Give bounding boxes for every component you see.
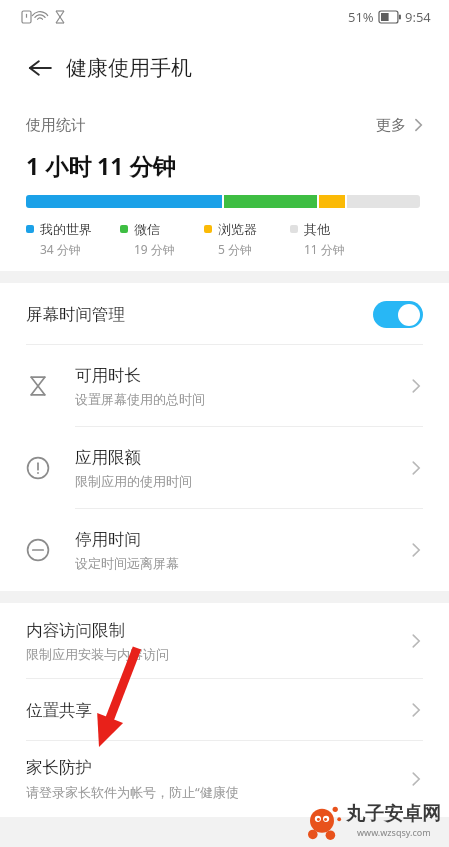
staticText: 限制应用的使用时间 xyxy=(75,473,192,489)
staticText: 更多 xyxy=(376,116,406,135)
staticText: 丸子安卓网 xyxy=(346,802,441,826)
staticText: 位置共享 xyxy=(26,700,92,721)
staticText: 5 分钟 xyxy=(218,241,252,257)
button[interactable]: 应用限额 xyxy=(0,427,449,509)
staticText: 限制应用安装与内容访问 xyxy=(26,646,169,662)
button[interactable]: 家长防护 xyxy=(0,741,449,817)
staticText: 可用时长 xyxy=(75,365,141,386)
staticText: 微信 xyxy=(134,221,160,237)
staticText: 请登录家长软件为帐号，防止“健康使 xyxy=(26,783,239,801)
staticText: 1 小时 11 分钟 xyxy=(26,150,176,181)
staticText: 内容访问限制 xyxy=(26,620,125,641)
staticText: 34 分钟 xyxy=(40,241,81,257)
staticText: 屏幕时间管理 xyxy=(26,304,125,325)
staticText: 其他 xyxy=(304,221,330,237)
staticText: 家长防护 xyxy=(26,757,92,778)
staticText: 使用统计 xyxy=(26,116,86,135)
staticText: 51% xyxy=(348,8,374,26)
button[interactable]: 使用统计 xyxy=(0,102,449,148)
staticText: 应用限额 xyxy=(75,447,141,468)
staticText: 11 分钟 xyxy=(304,241,345,257)
button[interactable]: 停用时间 xyxy=(0,509,449,591)
staticText: 9:54 xyxy=(405,8,431,26)
staticText: 19 分钟 xyxy=(134,241,175,257)
staticText: 我的世界 xyxy=(40,221,92,237)
staticText: 设置屏幕使用的总时间 xyxy=(75,391,205,407)
button[interactable]: 屏幕时间管理 xyxy=(0,283,449,345)
staticText: 浏览器 xyxy=(218,221,257,237)
staticText: 健康使用手机 xyxy=(66,55,192,81)
button[interactable]: 可用时长 xyxy=(0,345,449,427)
button[interactable]: Back xyxy=(20,48,60,88)
button[interactable]: 内容访问限制 xyxy=(0,603,449,679)
staticText: www.wzsqsy.com xyxy=(357,826,431,838)
button[interactable]: 位置共享 xyxy=(0,679,449,741)
staticText: 停用时间 xyxy=(75,529,141,550)
staticText: 设定时间远离屏幕 xyxy=(75,555,179,571)
